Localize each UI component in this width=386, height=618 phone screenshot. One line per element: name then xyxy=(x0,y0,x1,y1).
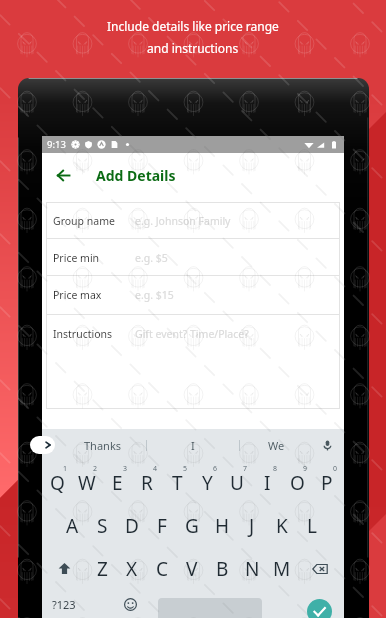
staticText: 9 xyxy=(303,464,308,474)
button[interactable]: D xyxy=(117,504,147,547)
staticText: F xyxy=(157,513,167,539)
staticText: 8 xyxy=(273,464,278,474)
button[interactable]: K xyxy=(267,504,297,547)
staticText: 1 xyxy=(63,464,68,474)
staticText: K xyxy=(276,513,288,539)
staticText: M xyxy=(273,556,291,582)
button[interactable]: I xyxy=(252,461,282,504)
button[interactable]: G xyxy=(177,504,207,547)
staticText: T xyxy=(172,470,183,496)
staticText: R xyxy=(141,470,153,496)
button[interactable]: ?123 xyxy=(42,590,85,618)
button[interactable]: Voice input xyxy=(313,429,341,461)
button[interactable]: Emoji xyxy=(115,590,146,618)
staticText: 2 xyxy=(93,464,98,474)
button[interactable]: Expand suggestions xyxy=(30,436,55,454)
button[interactable]: C xyxy=(147,547,177,590)
staticText: C xyxy=(156,556,169,582)
button[interactable]: Backspace xyxy=(297,547,342,590)
button[interactable]: Q xyxy=(42,461,72,504)
button[interactable]: O xyxy=(282,461,312,504)
staticText: Y xyxy=(202,470,213,496)
button[interactable]: T xyxy=(162,461,192,504)
staticText: A xyxy=(66,513,79,539)
staticText: U xyxy=(230,470,244,496)
staticText: P xyxy=(321,470,333,496)
staticText: e.g. Johnson Family xyxy=(135,214,231,228)
button[interactable]: R xyxy=(132,461,162,504)
button[interactable]: Instructions xyxy=(46,315,340,409)
button[interactable]: N xyxy=(237,547,267,590)
staticText: V xyxy=(186,556,198,582)
staticText: B xyxy=(216,556,229,582)
button[interactable]: Price min xyxy=(46,239,340,276)
staticText: ?123 xyxy=(52,597,76,612)
button[interactable]: Space xyxy=(146,590,273,618)
button[interactable]: P xyxy=(312,461,342,504)
button[interactable]: X xyxy=(117,547,147,590)
staticText: I xyxy=(191,438,195,453)
staticText: Add Details xyxy=(96,166,176,185)
staticText: 7 xyxy=(243,464,248,474)
staticText: Group name xyxy=(53,214,115,228)
button[interactable]: Price max xyxy=(46,276,340,315)
button[interactable]: S xyxy=(87,504,117,547)
button[interactable]: Shift xyxy=(42,547,87,590)
button[interactable]: H xyxy=(207,504,237,547)
staticText: E xyxy=(112,470,123,496)
staticText: 3 xyxy=(123,464,128,474)
button[interactable]: J xyxy=(237,504,267,547)
button[interactable]: M xyxy=(267,547,297,590)
staticText: Price min xyxy=(53,251,100,265)
staticText: e.g. $15 xyxy=(135,288,174,302)
staticText: Instructions xyxy=(53,327,113,341)
button[interactable]: E xyxy=(102,461,132,504)
staticText: G xyxy=(185,513,199,539)
button[interactable]: B xyxy=(207,547,237,590)
button[interactable]: U xyxy=(222,461,252,504)
staticText: Gift event? Time/Place? xyxy=(135,327,249,341)
staticText: Include details like price range xyxy=(107,18,279,34)
staticText: L xyxy=(307,513,317,539)
staticText: J xyxy=(249,513,255,539)
button[interactable]: Thanks xyxy=(60,429,146,461)
staticText: 4 xyxy=(153,464,158,474)
staticText: Thanks xyxy=(84,438,122,453)
button[interactable]: A xyxy=(57,504,87,547)
button[interactable]: F xyxy=(147,504,177,547)
button[interactable]: Group name xyxy=(46,202,340,239)
staticText: W xyxy=(78,470,96,496)
staticText: S xyxy=(97,513,108,539)
button[interactable]: Done xyxy=(307,590,344,618)
staticText: We xyxy=(268,438,285,453)
button[interactable]: We xyxy=(240,429,313,461)
staticText: e.g. $5 xyxy=(135,251,168,265)
staticText: I xyxy=(264,470,271,496)
staticText: D xyxy=(125,513,139,539)
staticText: 5 xyxy=(183,464,188,474)
button[interactable]: I xyxy=(147,429,239,461)
staticText: 9:13 xyxy=(47,138,66,151)
button[interactable]: Back xyxy=(50,162,76,188)
button[interactable]: W xyxy=(72,461,102,504)
staticText: Q xyxy=(50,470,65,496)
staticText: Z xyxy=(97,556,108,582)
staticText: 6 xyxy=(213,464,218,474)
staticText: X xyxy=(126,556,138,582)
button[interactable]: L xyxy=(297,504,327,547)
button[interactable]: Z xyxy=(87,547,117,590)
staticText: and instructions xyxy=(147,40,239,56)
staticText: H xyxy=(215,513,230,539)
button[interactable]: V xyxy=(177,547,207,590)
button[interactable]: Y xyxy=(192,461,222,504)
staticText: 0 xyxy=(333,464,338,474)
staticText: O xyxy=(290,470,305,496)
staticText: N xyxy=(245,556,260,582)
staticText: Price max xyxy=(53,288,102,302)
